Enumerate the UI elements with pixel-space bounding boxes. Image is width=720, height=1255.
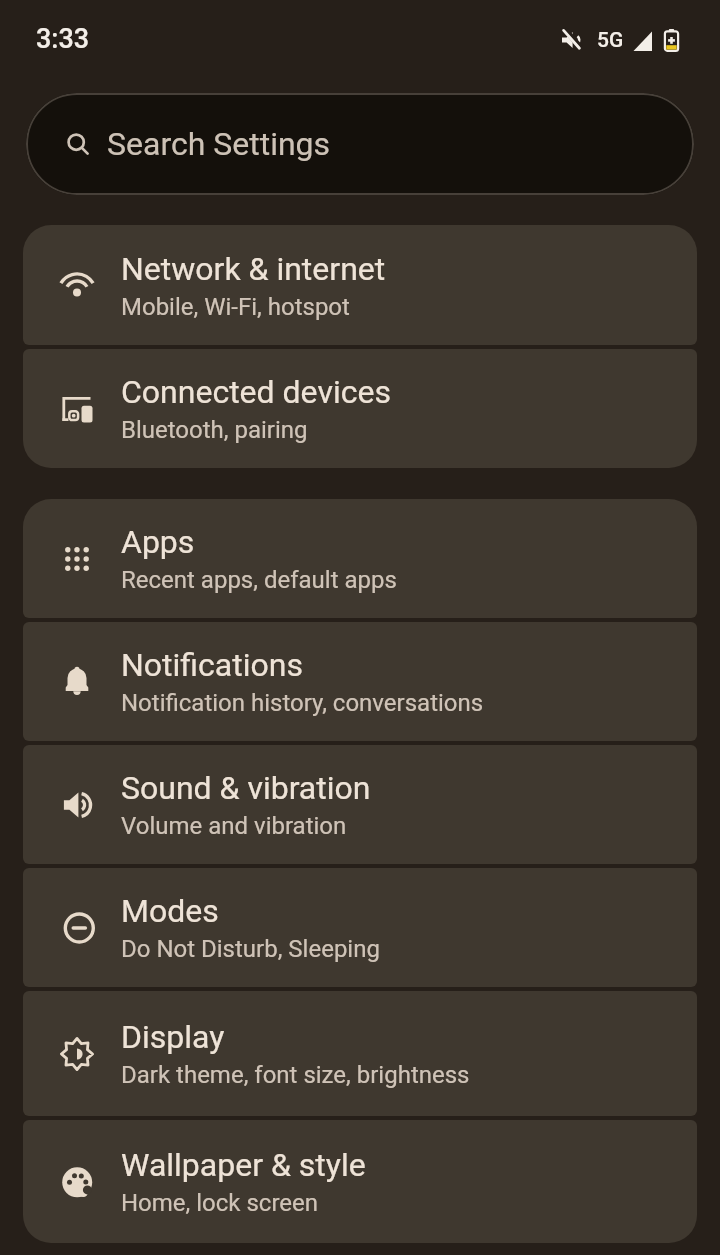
button[interactable]: Search Settings xyxy=(26,93,694,195)
staticText: Do Not Disturb, Sleeping xyxy=(121,935,380,963)
button[interactable]: Display xyxy=(23,991,697,1116)
button[interactable]: Notifications xyxy=(23,622,697,741)
staticText: Dark theme, font size, brightness xyxy=(121,1061,470,1089)
staticText: Recent apps, default apps xyxy=(121,566,397,594)
staticText: Wallpaper & style xyxy=(121,1146,366,1184)
staticText: Search Settings xyxy=(107,125,331,163)
staticText: 5G xyxy=(597,28,624,53)
staticText: Notification history, conversations xyxy=(121,689,484,717)
staticText: Sound & vibration xyxy=(121,769,371,807)
button[interactable]: Connected devices xyxy=(23,349,697,468)
button[interactable]: Modes xyxy=(23,868,697,987)
button[interactable]: Wallpaper & style xyxy=(23,1120,697,1243)
button[interactable]: Apps xyxy=(23,499,697,618)
staticText: Display xyxy=(121,1018,225,1056)
staticText: Bluetooth, pairing xyxy=(121,416,308,444)
button[interactable]: Network & internet xyxy=(23,225,697,345)
staticText: Modes xyxy=(121,892,219,930)
staticText: Apps xyxy=(121,523,195,561)
staticText: 3:33 xyxy=(36,23,90,55)
staticText: Connected devices xyxy=(121,373,391,411)
button[interactable]: Sound & vibration xyxy=(23,745,697,864)
staticText: Volume and vibration xyxy=(121,812,347,840)
staticText: Mobile, Wi-Fi, hotspot xyxy=(121,293,350,321)
staticText: Notifications xyxy=(121,646,303,684)
staticText: Home, lock screen xyxy=(121,1189,319,1217)
staticText: Network & internet xyxy=(121,250,386,288)
